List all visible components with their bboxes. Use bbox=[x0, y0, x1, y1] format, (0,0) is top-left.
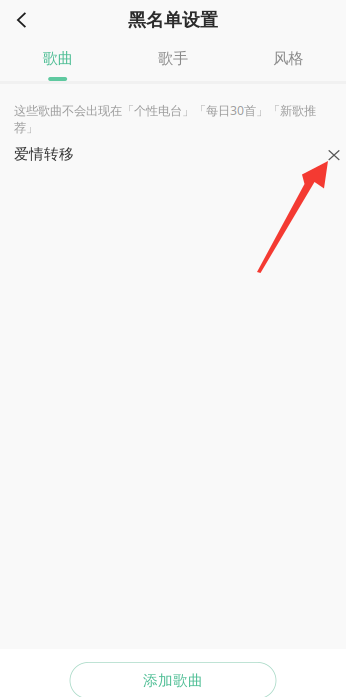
button[interactable]: 风格 bbox=[231, 40, 346, 81]
staticText: 爱情转移 bbox=[14, 145, 74, 163]
button[interactable]: 添加歌曲 bbox=[70, 662, 276, 697]
staticText: 歌曲 bbox=[43, 49, 73, 68]
staticText: 添加歌曲 bbox=[143, 671, 203, 690]
button[interactable]: 歌曲 bbox=[0, 40, 115, 81]
staticText: 歌手 bbox=[158, 49, 188, 68]
button[interactable]: 歌手 bbox=[115, 40, 231, 81]
staticText: 风格 bbox=[273, 49, 303, 68]
button[interactable]: Remove song bbox=[316, 140, 340, 169]
staticText: 这些歌曲不会出现在「个性电台」「每日30首」「新歌推荐」 bbox=[14, 102, 316, 136]
button[interactable]: Back bbox=[0, 1, 40, 39]
staticText: 黑名单设置 bbox=[128, 9, 218, 31]
